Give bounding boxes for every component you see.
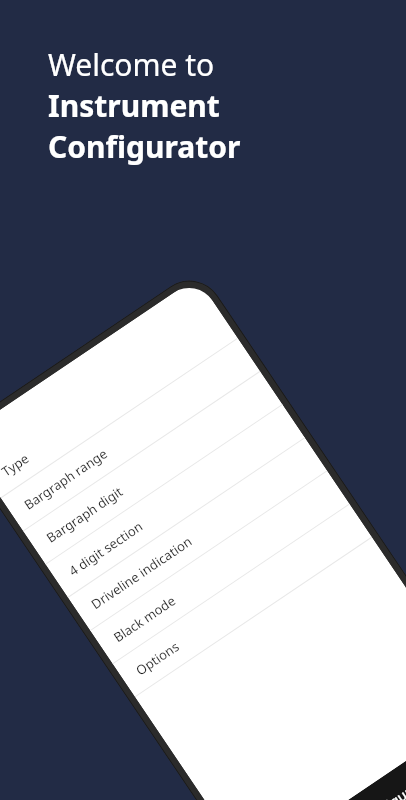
staticText: Instrument (48, 85, 220, 126)
button[interactable]: Options (113, 504, 372, 697)
button[interactable]: Bargraph digit (23, 372, 283, 565)
staticText: Bargraph digit (43, 482, 127, 547)
staticText: Type (0, 449, 32, 480)
staticText: Configurator (48, 126, 241, 167)
staticText: Reconfigure (344, 778, 406, 800)
button[interactable]: Black mode (90, 471, 350, 664)
staticText: Options (132, 637, 183, 679)
button[interactable]: Type (0, 305, 238, 498)
button[interactable]: Bargraph range (1, 338, 260, 532)
button[interactable]: Reconfigure (261, 714, 406, 800)
staticText: Bargraph range (20, 444, 111, 513)
button[interactable]: Driveline indication (68, 438, 328, 631)
staticText: Driveline indication (87, 532, 195, 613)
staticText: 4 digit section (65, 517, 146, 580)
staticText: Black mode (110, 591, 180, 646)
button[interactable]: 4 digit section (46, 405, 305, 598)
staticText: Welcome to (48, 44, 215, 85)
